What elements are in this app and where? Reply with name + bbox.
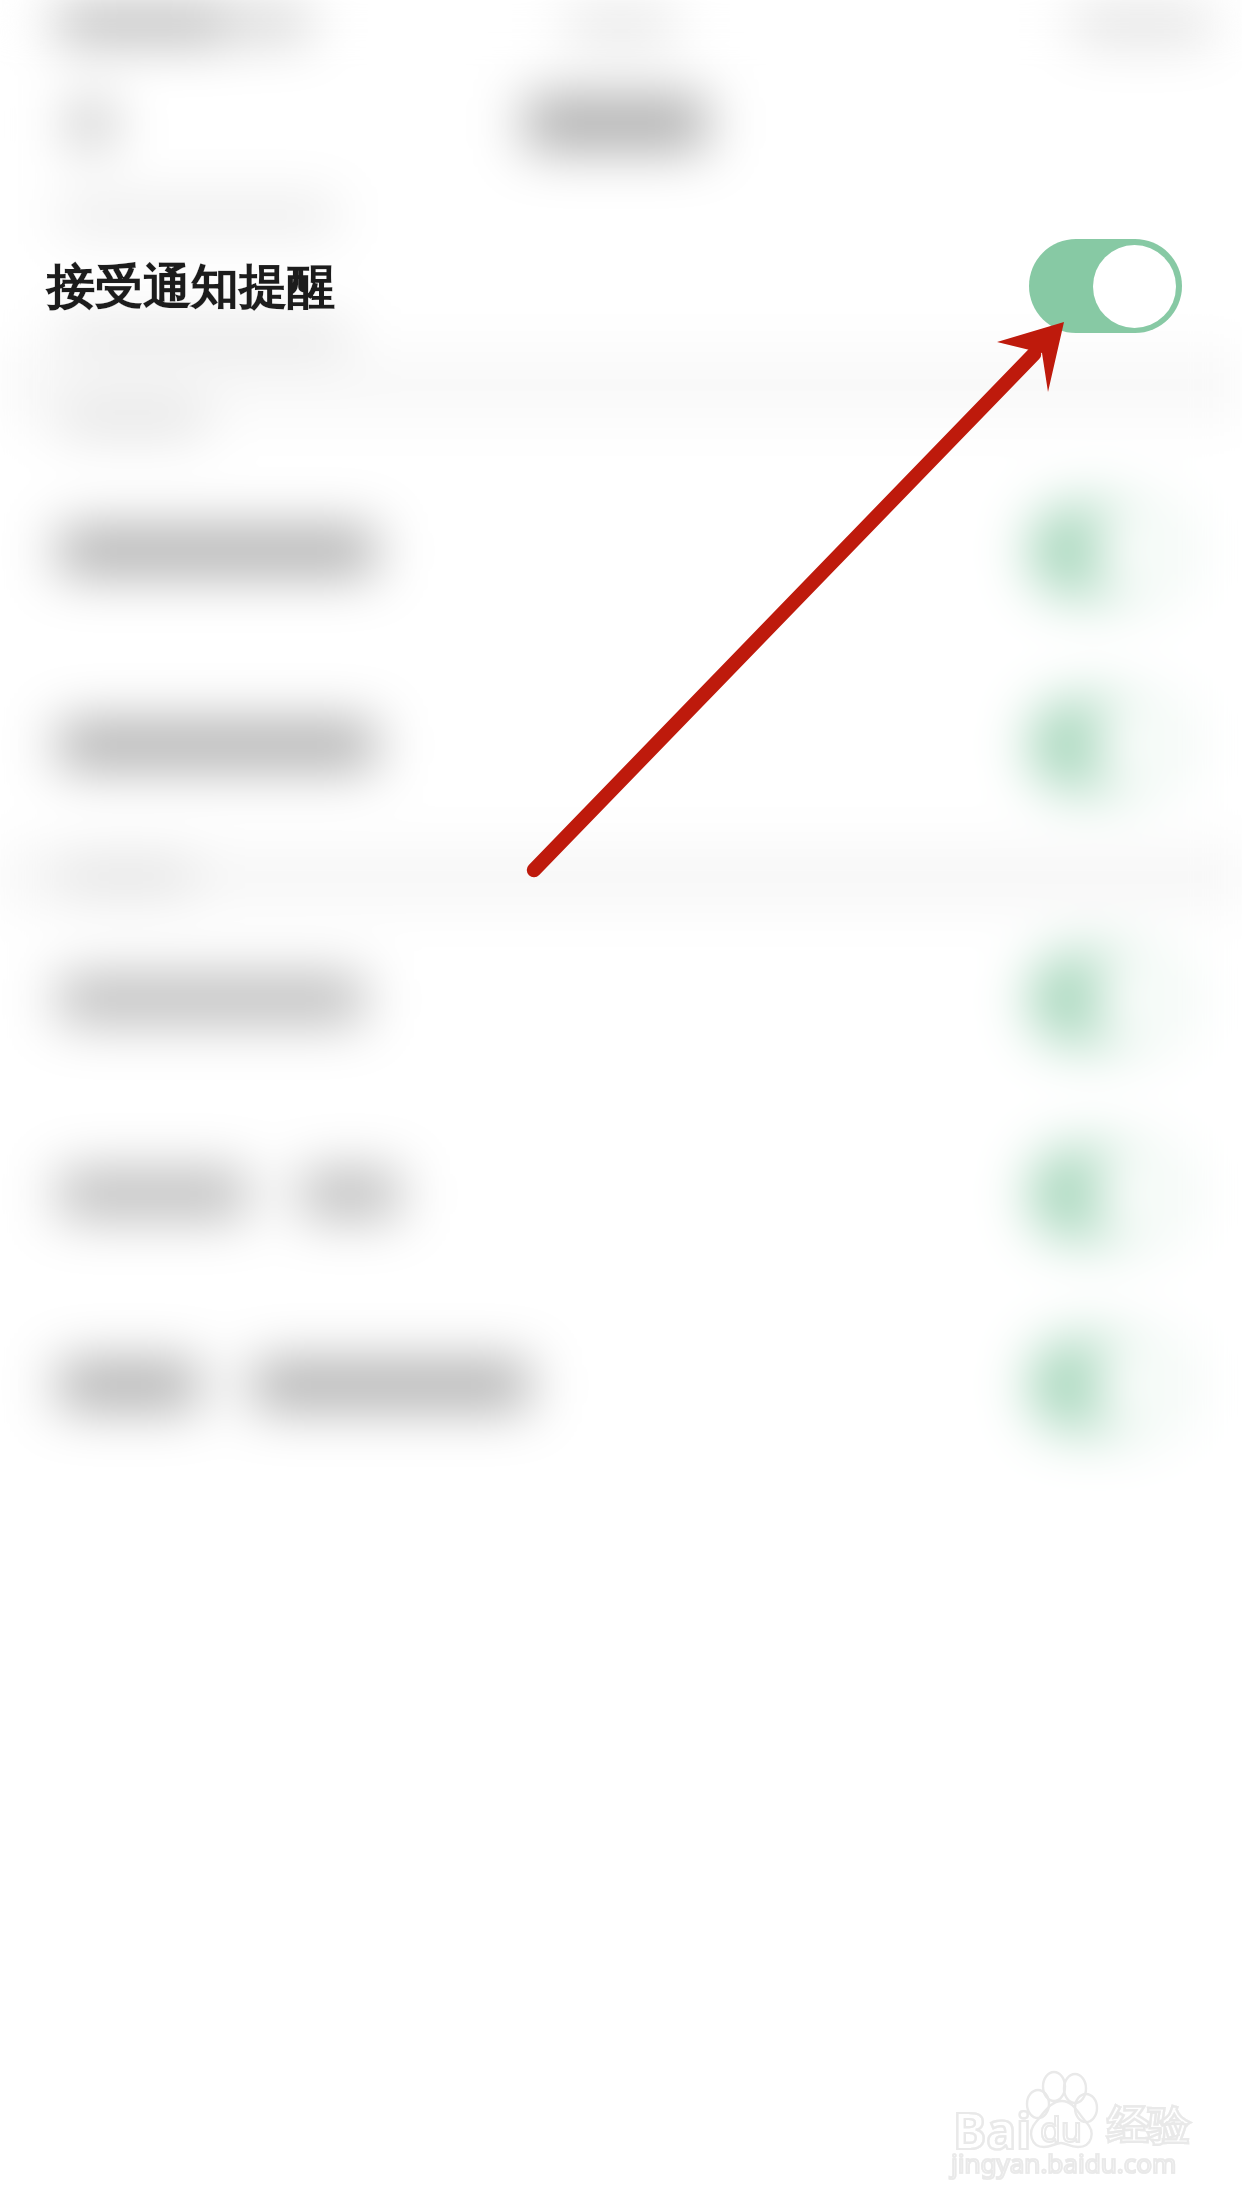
button[interactable]: 接受通知提醒 开关，已开启 xyxy=(1029,239,1182,333)
button[interactable]: 设置项四 开关 xyxy=(1029,1147,1182,1241)
button[interactable]: 设置项三 开关 xyxy=(1029,952,1182,1046)
button[interactable]: 设置项二 开关 xyxy=(1029,698,1182,792)
button[interactable]: 设置项一 xyxy=(0,454,1242,648)
button[interactable]: 设置项三 xyxy=(0,902,1242,1096)
button[interactable]: 设置项一 开关 xyxy=(1029,504,1182,598)
button[interactable]: 设置项四 xyxy=(0,1097,1242,1291)
staticText: 经验 xyxy=(1107,2101,1189,2153)
button[interactable]: 设置项五 xyxy=(0,1288,1242,1482)
staticText: Bai xyxy=(953,2096,1032,2164)
button[interactable]: 设置项二 xyxy=(0,648,1242,842)
button[interactable]: 接受通知提醒 xyxy=(0,196,1242,382)
button[interactable]: 返回 xyxy=(30,80,150,170)
staticText: jingyan.baidu.com xyxy=(951,2145,1177,2180)
staticText: du xyxy=(1040,2106,1082,2152)
button[interactable]: 设置项五 开关 xyxy=(1029,1338,1182,1432)
staticText: 接受通知提醒 xyxy=(46,258,334,318)
